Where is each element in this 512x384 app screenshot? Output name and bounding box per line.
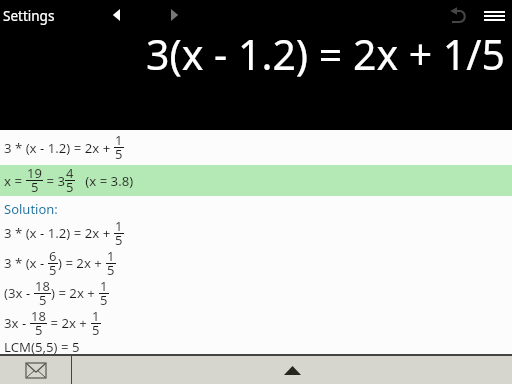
- staticText: Solution:: [4, 200, 58, 218]
- staticText: 5: [66, 181, 74, 194]
- staticText: 5: [92, 324, 100, 337]
- staticText: 1: [115, 220, 123, 233]
- staticText: (x = 3.8): [75, 172, 134, 190]
- staticText: 3 * (x -: [4, 254, 48, 272]
- staticText: ) = 2x +: [58, 254, 106, 272]
- staticText: 1: [100, 280, 108, 293]
- staticText: 3 * (x - 1.2) = 2x +: [4, 139, 114, 157]
- staticText: 5: [31, 181, 39, 194]
- button[interactable]: [484, 11, 505, 21]
- button[interactable]: Settings: [3, 7, 55, 25]
- staticText: 5: [49, 264, 57, 277]
- button[interactable]: [72, 356, 512, 384]
- button[interactable]: [447, 5, 469, 27]
- button[interactable]: [167, 5, 183, 25]
- staticText: 5: [115, 234, 123, 247]
- staticText: 1: [107, 250, 115, 263]
- staticText: 5: [100, 294, 108, 307]
- staticText: 5: [107, 264, 115, 277]
- staticText: LCM(5,5) = 5: [4, 338, 80, 354]
- staticText: 18: [31, 310, 46, 323]
- staticText: 1: [115, 134, 123, 147]
- staticText: ) = 2x +: [51, 284, 99, 302]
- staticText: 19: [27, 167, 42, 180]
- staticText: 3 * (x - 1.2) = 2x +: [4, 224, 114, 242]
- staticText: 3x -: [4, 314, 30, 332]
- staticText: = 2x +: [47, 314, 91, 332]
- staticText: 5: [39, 294, 47, 307]
- staticText: 18: [35, 280, 50, 293]
- staticText: 1: [92, 310, 100, 323]
- staticText: 5: [35, 324, 43, 337]
- staticText: 3(x - 1.2) = 2x + 1/5: [146, 26, 505, 82]
- button[interactable]: [108, 5, 124, 25]
- staticText: 6: [49, 250, 57, 263]
- staticText: x =: [4, 172, 26, 190]
- staticText: (3x -: [4, 284, 34, 302]
- staticText: = 3: [43, 172, 65, 190]
- button[interactable]: [0, 356, 71, 384]
- staticText: 4: [66, 167, 74, 180]
- staticText: 5: [115, 148, 123, 161]
